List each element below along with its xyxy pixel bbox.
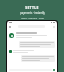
staticText: SETTLE: [25, 5, 39, 10]
other: Payment: [9, 50, 12, 53]
button[interactable]: [7, 31, 57, 39]
staticText: send · request · split: [21, 16, 44, 19]
button[interactable]: Payment: [7, 50, 57, 53]
button[interactable]: [21, 55, 55, 62]
staticText: payments · instantly: [20, 11, 45, 15]
button[interactable]: Menu: [7, 24, 57, 29]
button[interactable]: [19, 41, 55, 48]
